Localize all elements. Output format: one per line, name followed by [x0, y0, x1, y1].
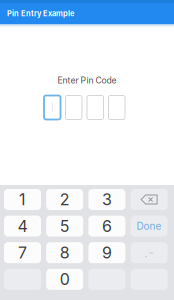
button[interactable]: 7	[4, 242, 41, 263]
staticText: 9	[102, 243, 112, 262]
staticText: 4	[17, 216, 27, 236]
staticText: 7	[18, 243, 27, 262]
button[interactable]: Done	[131, 216, 168, 237]
button[interactable]: 1	[4, 189, 41, 210]
button[interactable]: 5	[46, 216, 83, 237]
staticText: 0	[60, 270, 70, 289]
staticText: 3	[102, 190, 112, 209]
staticText: Enter Pin Code	[57, 75, 116, 85]
staticText: 5	[60, 216, 70, 236]
button[interactable]: 9	[88, 242, 125, 263]
staticText: 2	[60, 190, 70, 209]
staticText: 8	[60, 243, 70, 262]
staticText: .-	[144, 245, 154, 261]
staticText: Done	[137, 220, 162, 232]
staticText: Pin Entry Example	[7, 9, 74, 18]
button[interactable]: 2	[46, 189, 83, 210]
button[interactable]: Delete	[131, 189, 168, 210]
staticText: 1	[19, 190, 26, 209]
button[interactable]: 3	[88, 189, 125, 210]
button[interactable]: 8	[46, 242, 83, 263]
staticText: 6	[102, 216, 112, 236]
button[interactable]: 0	[46, 269, 83, 290]
button[interactable]: 4	[4, 216, 41, 237]
button[interactable]: 6	[88, 216, 125, 237]
